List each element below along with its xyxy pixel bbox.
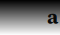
staticText: a <box>47 3 58 30</box>
